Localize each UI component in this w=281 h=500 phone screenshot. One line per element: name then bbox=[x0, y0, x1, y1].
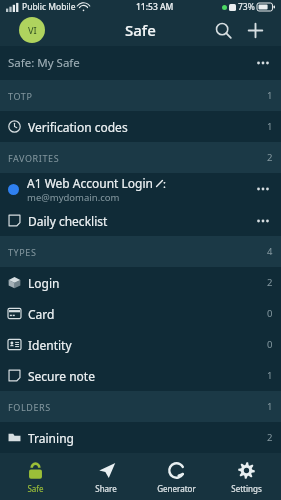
button[interactable]: Generator bbox=[141, 454, 211, 500]
staticText: 2 bbox=[267, 431, 273, 444]
staticText: Login bbox=[28, 275, 60, 291]
button[interactable]: Safe bbox=[0, 454, 71, 500]
staticText: 4 bbox=[267, 245, 273, 258]
button[interactable]: Login bbox=[0, 267, 281, 298]
staticText: 1 bbox=[267, 369, 273, 382]
staticText: 2 bbox=[267, 276, 273, 289]
staticText: Identity bbox=[28, 337, 72, 353]
staticText: FOLDERS bbox=[8, 401, 51, 413]
button[interactable]: Safe: My Safe bbox=[0, 46, 281, 80]
button[interactable]: A1 Web Account Login bbox=[0, 173, 281, 205]
staticText: Training bbox=[28, 430, 74, 446]
staticText: VI bbox=[28, 24, 37, 36]
button[interactable]: Identity bbox=[0, 329, 281, 360]
staticText: 11:53 AM bbox=[136, 1, 174, 13]
staticText: Card bbox=[28, 306, 55, 322]
staticText: Safe bbox=[125, 20, 156, 40]
button[interactable]: More options bbox=[253, 211, 273, 231]
staticText: Generator bbox=[157, 483, 196, 494]
staticText: Safe bbox=[27, 483, 44, 494]
staticText: Daily checklist bbox=[28, 213, 108, 229]
button[interactable]: Add bbox=[239, 14, 271, 46]
staticText: Verification codes bbox=[28, 119, 128, 135]
staticText: A1 Web Account Login bbox=[27, 175, 154, 191]
button[interactable]: Settings bbox=[211, 454, 281, 500]
staticText: TYPES bbox=[8, 246, 37, 258]
staticText: Safe: My Safe bbox=[8, 55, 80, 71]
button[interactable]: Card bbox=[0, 298, 281, 329]
staticText: Public Mobile bbox=[22, 1, 76, 13]
staticText: 73% bbox=[238, 1, 255, 13]
staticText: 1 bbox=[267, 400, 273, 413]
staticText: Share bbox=[95, 483, 117, 494]
staticText: Secure note bbox=[28, 368, 95, 384]
button[interactable]: Training bbox=[0, 422, 281, 453]
staticText: 1 bbox=[267, 120, 273, 133]
staticText: TOTP bbox=[8, 90, 33, 102]
button[interactable]: Daily checklist bbox=[0, 205, 281, 236]
button[interactable]: Secure note bbox=[0, 360, 281, 391]
button[interactable]: Search bbox=[207, 14, 239, 46]
staticText: : bbox=[163, 176, 166, 191]
staticText: Settings bbox=[231, 483, 262, 494]
staticText: FAVORITES bbox=[8, 152, 60, 164]
button[interactable]: Verification codes bbox=[0, 111, 281, 142]
staticText: 1 bbox=[267, 89, 273, 102]
button[interactable]: Share bbox=[71, 454, 141, 500]
staticText: 0 bbox=[267, 338, 273, 351]
button[interactable]: More options bbox=[253, 179, 273, 199]
staticText: me@mydomain.com bbox=[27, 191, 120, 204]
button[interactable]: More options bbox=[253, 53, 273, 73]
button[interactable]: VI bbox=[19, 17, 45, 43]
staticText: 0 bbox=[267, 307, 273, 320]
staticText: 2 bbox=[267, 151, 273, 164]
